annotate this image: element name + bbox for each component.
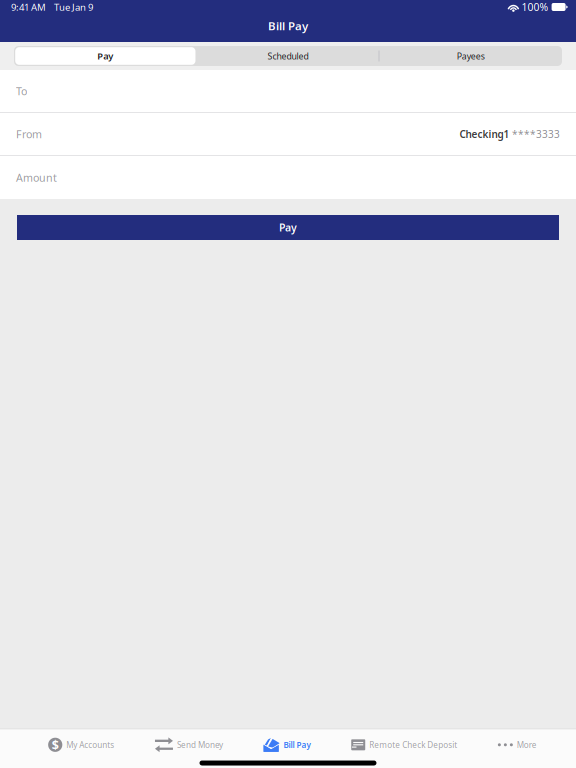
staticText: Send Money [177, 739, 223, 750]
staticText: 100% [522, 0, 549, 14]
staticText: My Accounts [66, 739, 114, 750]
button[interactable]: From [0, 113, 576, 155]
button[interactable]: Amount [0, 156, 576, 199]
staticText: Remote Check Deposit [369, 739, 457, 750]
button[interactable]: More [496, 730, 538, 759]
staticText: $ [52, 736, 59, 753]
staticText: To [16, 84, 27, 98]
button[interactable]: Remote Check Deposit [350, 730, 459, 759]
staticText: Scheduled [267, 50, 308, 62]
button[interactable]: Pay [14, 46, 197, 66]
staticText: Checking1 [459, 127, 509, 141]
button[interactable]: Pay [0, 215, 576, 240]
button[interactable]: Bill Pay [262, 730, 312, 759]
staticText: More [517, 739, 537, 750]
button[interactable]: $ [47, 730, 116, 759]
button[interactable]: Payees [379, 46, 562, 66]
staticText: Tue Jan 9 [54, 0, 93, 14]
staticText: Pay [97, 50, 113, 62]
staticText: From [16, 127, 42, 141]
staticText: Bill Pay [268, 18, 308, 34]
button[interactable]: Send Money [153, 730, 224, 759]
staticText: Pay [279, 220, 297, 235]
button[interactable]: Scheduled [197, 46, 379, 66]
staticText: Payees [457, 50, 485, 62]
staticText: Amount [16, 170, 57, 185]
staticText: Bill Pay [284, 739, 311, 750]
staticText: 9:41 AM [11, 0, 46, 14]
staticText: ****3333 [512, 127, 560, 141]
